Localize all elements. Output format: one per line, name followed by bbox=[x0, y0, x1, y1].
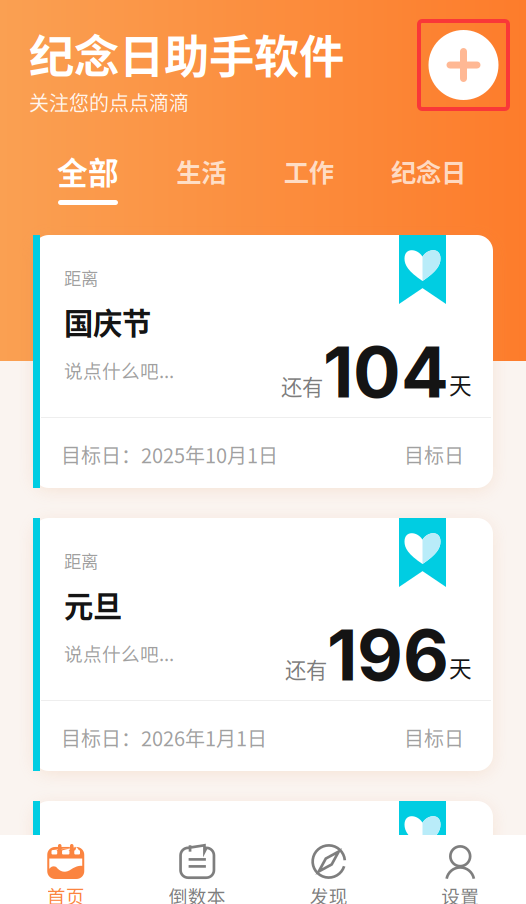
staticText: 纪念日 bbox=[391, 153, 466, 189]
staticText: 196 bbox=[327, 612, 449, 697]
staticText: 倒数本 bbox=[169, 882, 226, 904]
staticText: 说点什么吧... bbox=[64, 640, 174, 667]
button[interactable]: 还有 bbox=[33, 235, 493, 488]
staticText: 距离 bbox=[64, 265, 98, 290]
button[interactable]: 倒数本 bbox=[131, 830, 263, 904]
staticText: 天 bbox=[449, 368, 472, 400]
staticText: 设置 bbox=[441, 882, 479, 904]
button[interactable]: 全部 bbox=[57, 149, 119, 205]
button[interactable]: 工作 bbox=[284, 149, 334, 189]
button[interactable]: 生活 bbox=[176, 149, 226, 189]
staticText: 发现 bbox=[310, 882, 348, 904]
staticText: 目标日：2026年1月1日 bbox=[61, 723, 267, 752]
button[interactable]: 还有 bbox=[33, 801, 493, 904]
staticText: 国庆节 bbox=[64, 300, 151, 343]
staticText: 首页 bbox=[47, 882, 85, 904]
button[interactable]: 设置 bbox=[394, 830, 526, 904]
staticText: 距离 bbox=[64, 831, 98, 856]
staticText: 还有 bbox=[285, 654, 327, 684]
button[interactable]: 首页 bbox=[0, 830, 131, 904]
staticText: 目标日：2025年10月1日 bbox=[61, 440, 278, 469]
staticText: 还有 bbox=[281, 371, 323, 401]
staticText: 生活 bbox=[176, 153, 226, 189]
staticText: 工作 bbox=[284, 153, 334, 189]
staticText: 关注您的点点滴滴 bbox=[29, 88, 189, 117]
staticText: 目标日 bbox=[404, 440, 464, 469]
staticText: 距离 bbox=[64, 548, 98, 573]
button[interactable]: 还有 bbox=[33, 518, 493, 771]
button[interactable]: Add anniversary bbox=[419, 21, 508, 109]
staticText: 231 bbox=[328, 895, 449, 904]
staticText: 104 bbox=[323, 329, 449, 414]
staticText: 目标日 bbox=[404, 723, 464, 752]
staticText: 全部 bbox=[57, 149, 119, 193]
staticText: 天 bbox=[449, 651, 472, 683]
button[interactable]: 纪念日 bbox=[391, 149, 466, 189]
staticText: 说点什么吧... bbox=[64, 357, 174, 384]
staticText: 纪念日助手软件 bbox=[29, 21, 344, 87]
staticText: 春节 bbox=[64, 866, 122, 904]
staticText: 元旦 bbox=[64, 583, 122, 626]
button[interactable]: 发现 bbox=[263, 830, 394, 904]
